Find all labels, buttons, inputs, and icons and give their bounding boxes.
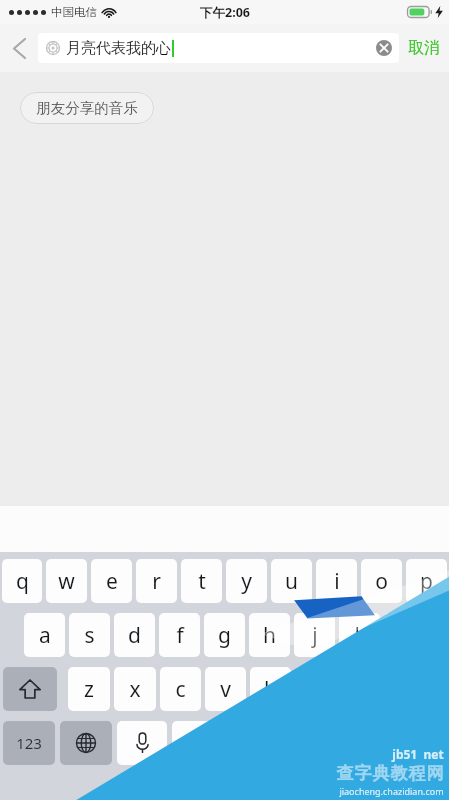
button[interactable]: d [114,613,155,657]
button[interactable]: g [204,613,245,657]
button[interactable]: n [295,667,336,711]
button[interactable]: c [160,667,201,711]
staticText: jiaocheng.chazidian.com [339,785,444,797]
button[interactable]: 123 [3,721,55,765]
staticText: u [285,567,298,596]
staticText: 朋友分享的音乐 [36,99,138,117]
button[interactable]: Clear text [369,33,399,63]
staticText: v [220,675,231,704]
staticText: h [263,621,276,650]
button[interactable]: h [249,613,290,657]
staticText: y [241,567,252,596]
button[interactable]: a [24,613,65,657]
staticText: 中国电信 [51,5,97,19]
staticText: s [84,621,95,650]
button[interactable]: 空格 [172,721,446,765]
button[interactable]: p [406,559,447,603]
button[interactable]: l [384,613,425,657]
staticText: e [106,567,118,596]
staticText: a [39,621,51,650]
staticText: 下午2:06 [200,4,250,21]
staticText: 123 [16,733,42,753]
button[interactable]: 月亮代表我的心 [38,33,399,63]
button[interactable]: Switch keyboard [60,721,112,765]
staticText: o [375,567,388,596]
staticText: c [175,675,186,704]
staticText: 月亮代表我的心 [66,39,171,58]
button[interactable]: Shift [3,667,57,711]
staticText: g [218,621,231,650]
staticText: w [58,567,75,596]
button[interactable]: Back [0,24,38,72]
staticText: d [128,621,141,650]
staticText: b [264,675,277,704]
button[interactable]: w [46,559,87,603]
staticText: 取消 [408,38,440,58]
button[interactable]: x [114,667,156,711]
staticText: jb51 net [392,746,444,762]
staticText: i [334,567,340,596]
staticText: k [354,621,366,650]
staticText: z [84,675,94,704]
button[interactable]: v [205,667,246,711]
button[interactable]: e [91,559,132,603]
staticText: p [420,567,433,596]
button[interactable]: j [294,613,335,657]
button[interactable]: y [226,559,267,603]
button[interactable]: z [68,667,110,711]
button[interactable]: o [361,559,402,603]
button[interactable]: 取消 [408,24,440,72]
button[interactable]: u [271,559,312,603]
button[interactable]: s [69,613,110,657]
button[interactable]: 朋友分享的音乐 [20,92,154,124]
staticText: f [176,621,184,650]
button[interactable]: f [159,613,200,657]
staticText: x [129,675,141,704]
staticText: t [198,567,206,596]
button[interactable]: Voice input [117,721,167,765]
staticText: 查字典教程网 [336,763,444,784]
staticText: j [312,621,318,650]
button[interactable]: r [136,559,177,603]
button[interactable]: k [339,613,380,657]
button[interactable]: q [2,559,42,603]
button[interactable]: i [316,559,357,603]
staticText: r [152,567,161,596]
staticText: q [16,567,29,596]
button[interactable]: t [181,559,222,603]
button[interactable]: b [250,667,291,711]
